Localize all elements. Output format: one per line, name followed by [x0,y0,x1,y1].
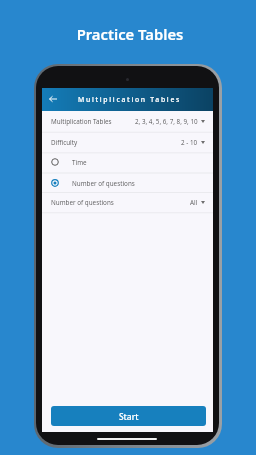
button[interactable]: Back [42,88,64,110]
staticText: Practice Tables [2,24,256,44]
staticText: Multiplication Tables [51,117,112,126]
staticText: 2 - 10 [181,138,198,147]
button[interactable]: Difficulty [42,132,213,153]
button[interactable]: Multiplication Tables [42,111,213,132]
staticText: Start [119,411,139,422]
staticText: 2, 3, 4, 5, 6, 7, 8, 9, 10 [135,117,198,126]
button[interactable]: Number of questions [42,192,213,212]
button[interactable]: Time [42,152,213,172]
staticText: Time [72,158,87,167]
staticText: Number of questions [51,198,114,207]
button[interactable]: Number of questions [42,173,213,193]
staticText: Difficulty [51,138,78,147]
button[interactable]: Start [51,406,206,426]
staticText: Multiplication Tables [78,95,182,104]
staticText: All [190,198,198,207]
staticText: Number of questions [72,179,135,188]
